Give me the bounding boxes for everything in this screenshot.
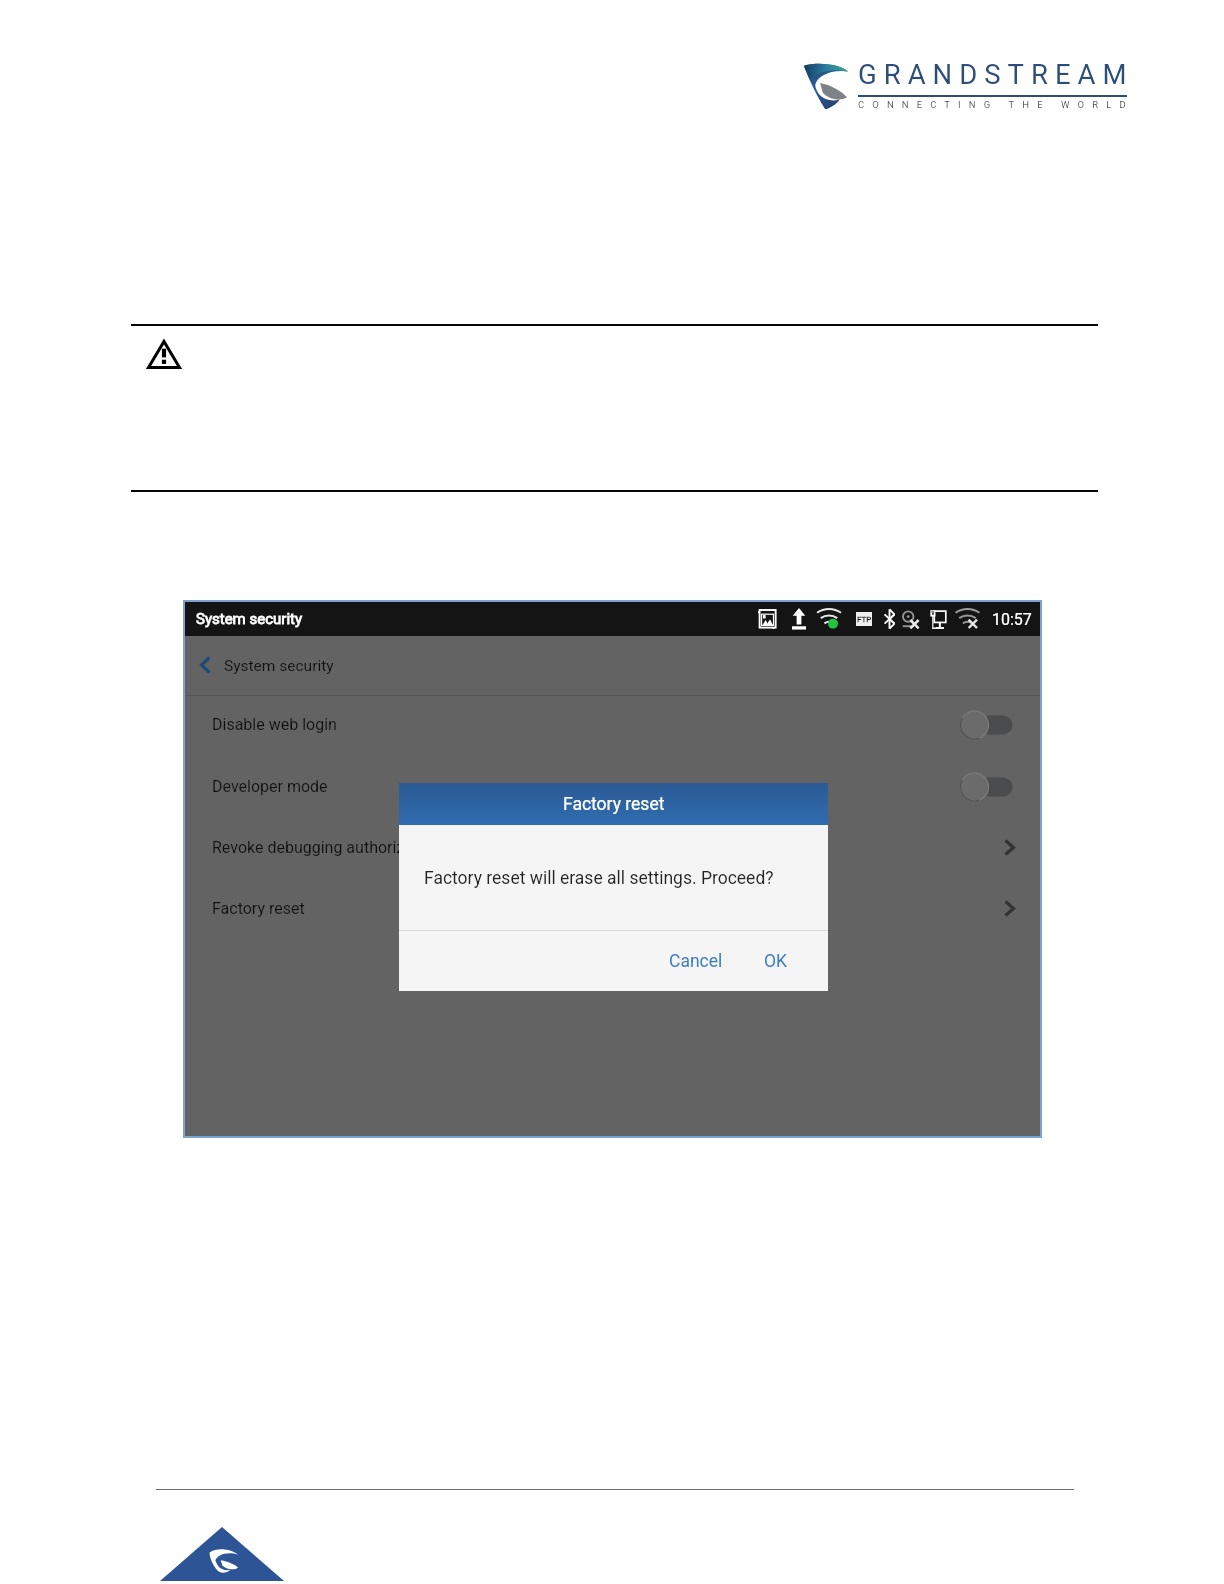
staticText: Developer mode — [212, 777, 328, 796]
staticText: Factory reset will erase all settings. P… — [424, 868, 774, 889]
staticText: GRANDSTREAM — [858, 58, 1134, 90]
button[interactable]: Revoke debugging authorization — [185, 817, 1040, 878]
other: Factory reset — [1005, 901, 1014, 916]
button[interactable]: Developer mode — [185, 756, 1040, 817]
other: Back — [200, 657, 210, 673]
staticText: Factory reset — [563, 794, 665, 815]
staticText: 10:57 — [992, 610, 1032, 629]
other: Disable web login — [958, 710, 1013, 740]
staticText: OK — [764, 951, 788, 972]
staticText: FTP — [857, 615, 872, 624]
staticText: Revoke debugging authorization — [212, 838, 441, 857]
button[interactable]: Cancel — [663, 941, 729, 981]
staticText: Cancel — [669, 951, 723, 972]
staticText: System security — [224, 657, 334, 675]
button[interactable]: Disable web login — [185, 694, 1040, 755]
staticText: CONNECTING THE WORLD — [858, 99, 1134, 110]
other: Developer mode — [958, 772, 1013, 802]
staticText: Factory reset — [212, 899, 305, 918]
button[interactable]: Factory reset — [185, 878, 1040, 939]
staticText: System security — [196, 610, 303, 628]
button[interactable]: Back — [185, 636, 1040, 694]
staticText: Disable web login — [212, 715, 337, 734]
button[interactable]: OK — [758, 941, 794, 981]
other: Revoke debugging authorization — [1005, 840, 1014, 855]
